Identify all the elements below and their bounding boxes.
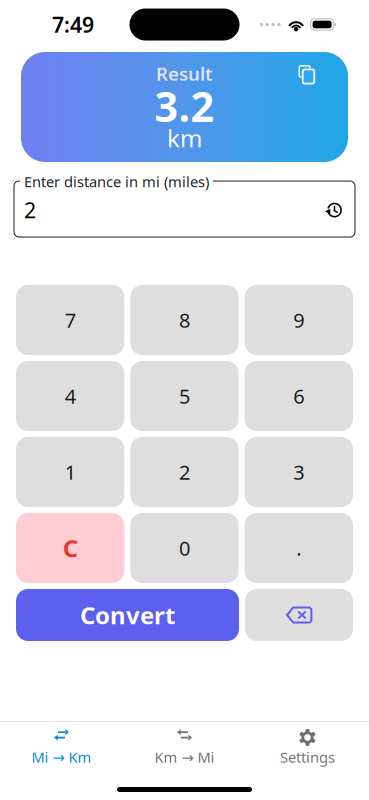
staticText: 8 — [179, 307, 190, 333]
button[interactable]: 2 — [130, 437, 239, 507]
button[interactable]: 0 — [130, 513, 239, 583]
staticText: 6 — [293, 383, 304, 409]
staticText: 3.2 — [154, 79, 214, 133]
staticText: 7 — [65, 307, 76, 333]
staticText: Result — [156, 61, 213, 86]
button[interactable]: Convert — [16, 589, 239, 641]
staticText: 5 — [179, 383, 190, 409]
staticText: Enter distance in mi (miles) — [24, 172, 209, 191]
staticText: 4 — [65, 383, 76, 409]
staticText: 9 — [293, 307, 304, 333]
button[interactable]: Copy result — [288, 55, 325, 94]
staticText: Mi → Km — [31, 747, 91, 767]
button[interactable]: Km → Mi — [123, 722, 246, 772]
button[interactable]: 6 — [245, 361, 353, 431]
staticText: Km → Mi — [154, 747, 214, 767]
staticText: 0 — [179, 535, 190, 561]
button[interactable]: 8 — [130, 285, 239, 355]
button[interactable]: 5 — [130, 361, 239, 431]
button[interactable]: 4 — [16, 361, 124, 431]
staticText: km — [167, 122, 202, 154]
button[interactable]: 1 — [16, 437, 124, 507]
staticText: 1 — [65, 459, 76, 485]
staticText: . — [296, 535, 301, 561]
button[interactable]: History — [318, 194, 347, 223]
button[interactable]: 9 — [245, 285, 353, 355]
staticText: C — [63, 532, 78, 564]
staticText: 2 — [179, 459, 190, 485]
button[interactable]: Backspace — [245, 589, 353, 641]
button[interactable]: Settings — [246, 722, 369, 772]
button[interactable]: C — [16, 513, 124, 583]
staticText: Convert — [80, 599, 175, 631]
staticText: 7:49 — [52, 10, 94, 39]
button[interactable]: 7 — [16, 285, 124, 355]
button[interactable]: . — [245, 513, 353, 583]
staticText: 2 — [24, 196, 36, 224]
staticText: Settings — [280, 747, 335, 767]
button[interactable]: 3 — [245, 437, 353, 507]
staticText: 3 — [293, 459, 304, 485]
button[interactable]: Mi → Km — [0, 722, 123, 772]
